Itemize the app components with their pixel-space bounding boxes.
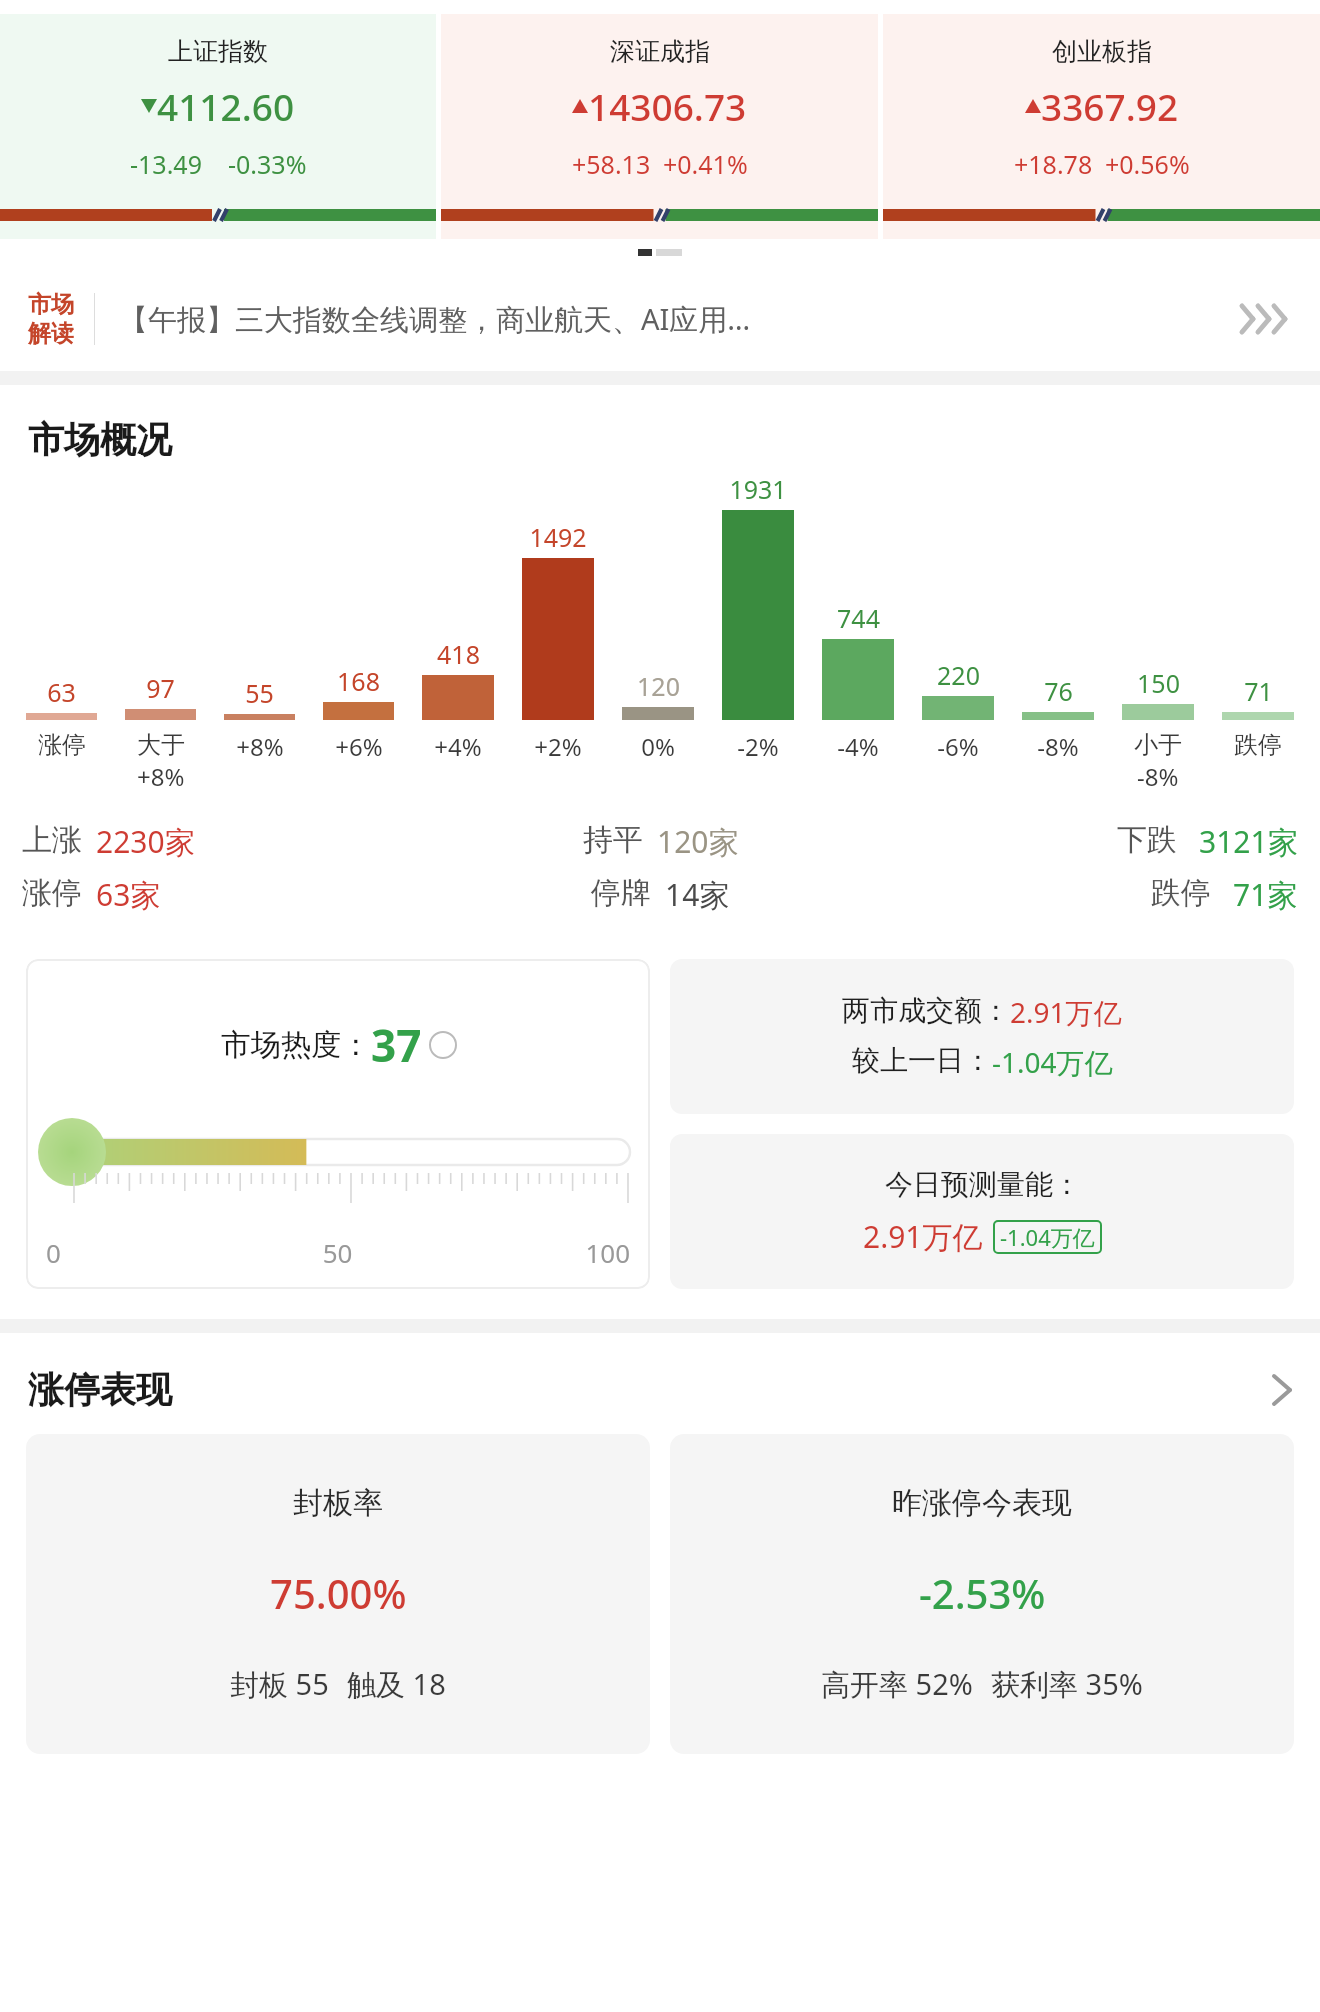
- staticText: 跌停: [1151, 874, 1211, 912]
- staticText: 解读: [28, 319, 74, 348]
- staticText: 3367.92: [1041, 81, 1179, 131]
- staticText: 168: [337, 664, 380, 698]
- staticText: 37: [371, 1015, 422, 1075]
- staticText: 50: [240, 1235, 435, 1270]
- staticText: 较上一日：: [852, 1043, 992, 1078]
- staticText: 停牌: [591, 874, 651, 912]
- staticText: -8%: [1137, 760, 1179, 793]
- staticText: 63家: [96, 874, 161, 915]
- staticText: 0%: [641, 730, 675, 763]
- button[interactable]: 昨涨停今表现: [670, 1434, 1294, 1754]
- staticText: -2.53%: [919, 1566, 1046, 1620]
- staticText: 获利率 35%: [991, 1664, 1143, 1704]
- staticText: 2.91万亿: [1010, 993, 1122, 1031]
- staticText: 1492: [529, 520, 587, 554]
- staticText: 上证指数: [168, 36, 268, 67]
- staticText: 71家: [1233, 874, 1298, 915]
- staticText: -1.04万亿: [992, 1043, 1113, 1081]
- staticText: -2%: [737, 730, 779, 763]
- staticText: 市场概况: [28, 417, 172, 462]
- staticText: 120: [637, 669, 680, 703]
- staticText: 大于: [137, 730, 185, 760]
- staticText: -0.33%: [228, 147, 307, 181]
- staticText: -6%: [937, 730, 979, 763]
- staticText: 小于: [1134, 730, 1182, 760]
- staticText: +8%: [137, 760, 185, 793]
- button[interactable]: 创业板指: [883, 14, 1320, 239]
- staticText: +2%: [534, 730, 582, 763]
- staticText: 14家: [665, 874, 730, 915]
- staticText: 220: [937, 658, 980, 692]
- staticText: 创业板指: [1052, 36, 1152, 67]
- staticText: 76: [1044, 674, 1073, 708]
- staticText: 封板 55: [230, 1664, 329, 1704]
- staticText: 封板率: [293, 1484, 383, 1522]
- staticText: 55: [245, 676, 274, 710]
- staticText: 71: [1244, 674, 1273, 708]
- staticText: 市场: [28, 290, 74, 319]
- button[interactable]: 封板率: [26, 1434, 650, 1754]
- staticText: 今日预测量能：: [885, 1167, 1081, 1202]
- staticText: 下跌: [1117, 821, 1177, 859]
- staticText: 跌停: [1234, 730, 1282, 760]
- staticText: 上涨: [22, 821, 82, 859]
- staticText: 75.00%: [270, 1566, 407, 1620]
- button[interactable]: 市场热度：: [26, 959, 650, 1289]
- staticText: 两市成交额：: [842, 993, 1010, 1028]
- staticText: 1931: [729, 472, 787, 506]
- button[interactable]: 上证指数: [0, 14, 436, 239]
- staticText: 100: [435, 1235, 630, 1270]
- staticText: 150: [1137, 666, 1180, 700]
- staticText: 120家: [657, 821, 739, 862]
- staticText: 744: [837, 601, 880, 635]
- staticText: 市场热度：: [221, 1026, 371, 1064]
- staticText: -13.49: [130, 147, 202, 181]
- staticText: -1.04万亿: [1000, 1222, 1095, 1252]
- staticText: -4%: [837, 730, 879, 763]
- staticText: +0.41%: [663, 147, 748, 181]
- button[interactable]: 深证成指: [441, 14, 878, 239]
- staticText: 14306.73: [588, 81, 747, 131]
- staticText: 高开率 52%: [821, 1664, 973, 1704]
- staticText: 涨停表现: [28, 1367, 1272, 1412]
- staticText: +0.56%: [1105, 147, 1190, 181]
- button[interactable]: 两市成交额：: [670, 959, 1294, 1114]
- staticText: 418: [437, 637, 480, 671]
- staticText: +8%: [236, 730, 284, 763]
- staticText: +58.13: [572, 147, 651, 181]
- staticText: 3121家: [1199, 821, 1298, 862]
- staticText: 97: [146, 671, 175, 705]
- button[interactable]: 涨停表现: [0, 1333, 1320, 1434]
- button[interactable]: 今日预测量能：: [670, 1134, 1294, 1289]
- staticText: -8%: [1037, 730, 1079, 763]
- staticText: 持平: [583, 821, 643, 859]
- other: 更多: [1238, 302, 1292, 336]
- staticText: +6%: [335, 730, 383, 763]
- staticText: 2230家: [96, 821, 195, 862]
- staticText: 涨停: [38, 730, 86, 760]
- staticText: 昨涨停今表现: [892, 1484, 1072, 1522]
- staticText: 4112.60: [157, 81, 295, 131]
- staticText: 63: [47, 675, 76, 709]
- staticText: 【午报】三大指数全线调整，商业航天、AI应用…: [119, 299, 1230, 339]
- staticText: 触及 18: [347, 1664, 446, 1704]
- staticText: 深证成指: [610, 36, 710, 67]
- staticText: +18.78: [1014, 147, 1093, 181]
- staticText: 涨停: [22, 874, 82, 912]
- staticText: 2.91万亿: [863, 1216, 983, 1257]
- staticText: +4%: [434, 730, 482, 763]
- staticText: 0: [46, 1235, 240, 1270]
- button[interactable]: 市场: [0, 266, 1320, 371]
